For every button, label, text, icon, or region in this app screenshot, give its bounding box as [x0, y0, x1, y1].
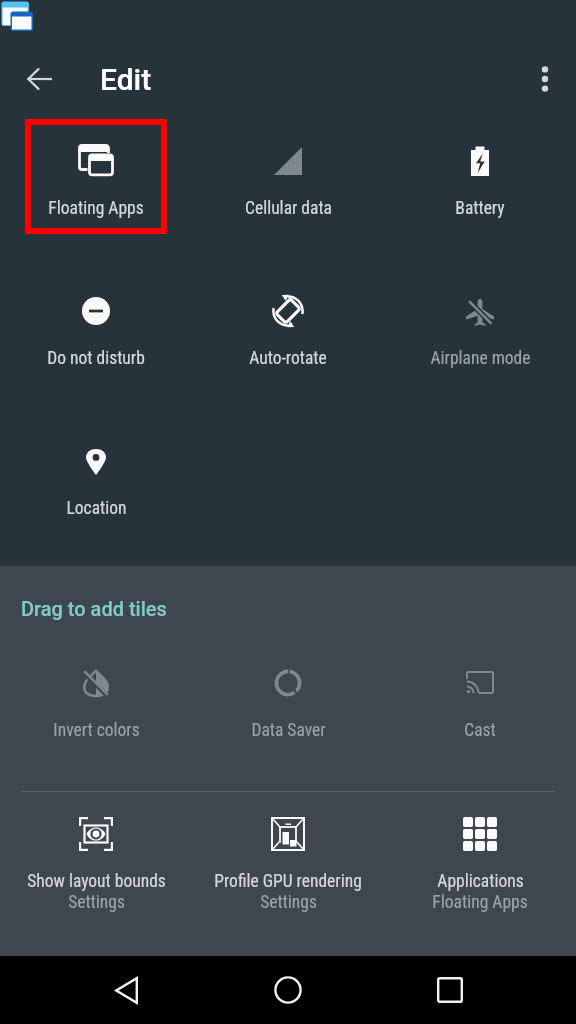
staticText: Drag to add tiles: [21, 597, 167, 620]
staticText: Show layout bounds: [27, 871, 166, 892]
button[interactable]: Back: [96, 960, 156, 1020]
button[interactable]: Home: [258, 960, 318, 1020]
staticText: Applications: [437, 871, 524, 892]
button[interactable]: Do not disturb: [0, 277, 192, 379]
staticText: Do not disturb: [47, 348, 145, 369]
button[interactable]: Auto-rotate: [192, 277, 384, 379]
staticText: Battery: [455, 198, 505, 219]
button[interactable]: Show layout bounds: [0, 800, 192, 924]
staticText: Settings: [68, 892, 125, 913]
staticText: Airplane mode: [430, 348, 531, 369]
staticText: Settings: [260, 892, 317, 913]
button[interactable]: Profile GPU rendering: [192, 800, 384, 924]
staticText: Floating Apps: [48, 198, 144, 219]
staticText: Location: [66, 498, 127, 519]
button[interactable]: Battery: [384, 126, 576, 229]
button[interactable]: Airplane mode: [384, 277, 576, 379]
button[interactable]: Recents: [420, 960, 480, 1020]
button[interactable]: Back: [16, 55, 64, 103]
button[interactable]: Location: [0, 428, 192, 529]
staticText: Profile GPU rendering: [214, 871, 362, 892]
staticText: Edit: [100, 62, 152, 97]
button[interactable]: Invert colors: [0, 649, 192, 751]
button[interactable]: Data Saver: [192, 649, 384, 751]
staticText: Floating Apps: [432, 892, 528, 913]
staticText: Cellular data: [245, 198, 332, 219]
button[interactable]: Applications: [384, 800, 576, 924]
button[interactable]: More options: [521, 55, 569, 103]
staticText: Auto-rotate: [249, 348, 327, 369]
staticText: Invert colors: [53, 720, 140, 741]
button[interactable]: Cellular data: [192, 126, 384, 229]
staticText: Data Saver: [251, 720, 326, 741]
button[interactable]: Floating Apps: [0, 126, 192, 229]
staticText: Cast: [464, 720, 496, 741]
button[interactable]: Cast: [384, 649, 576, 751]
